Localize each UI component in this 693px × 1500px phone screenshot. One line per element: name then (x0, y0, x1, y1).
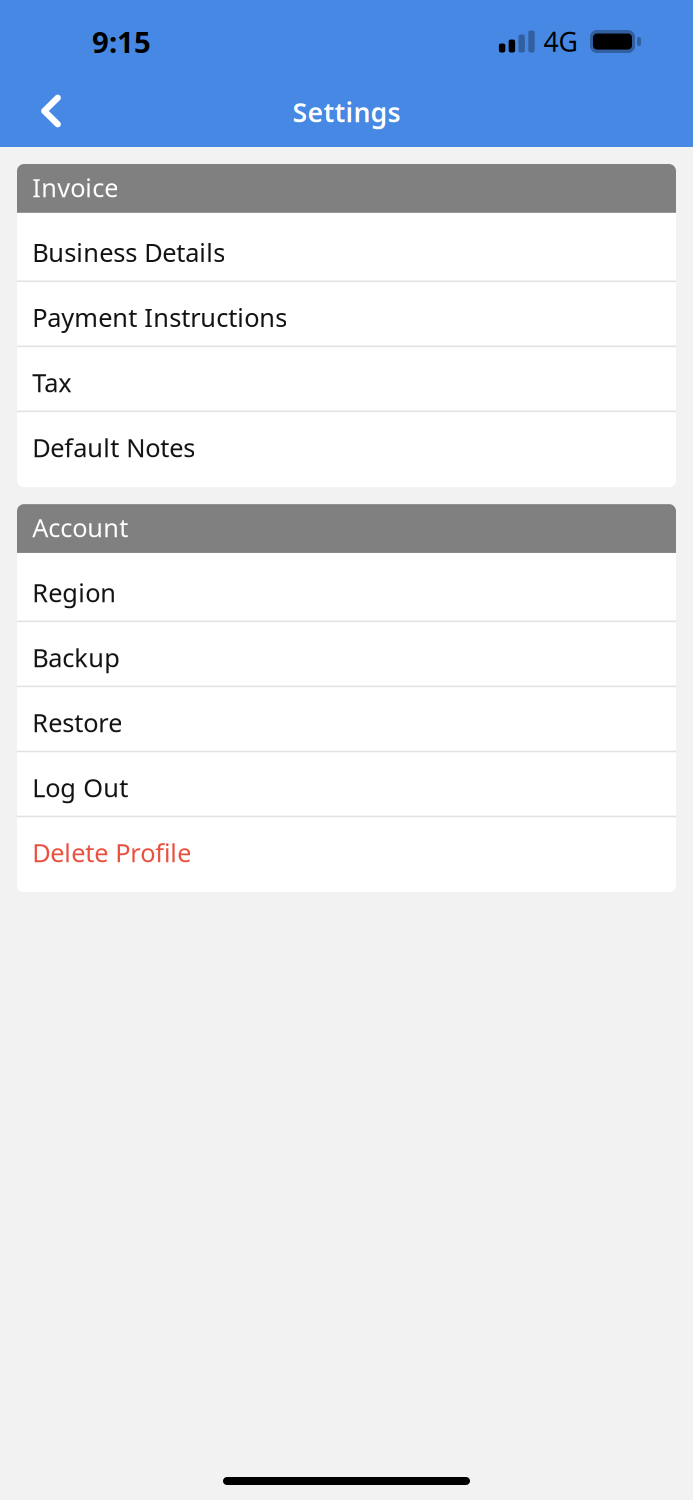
button[interactable]: Payment Instructions (17, 282, 676, 346)
button[interactable]: Default Notes (17, 412, 676, 476)
staticText: Account (32, 511, 128, 544)
staticText: Settings (292, 94, 400, 130)
staticText: Business Details (32, 235, 225, 269)
button[interactable]: Region (17, 557, 676, 621)
staticText: Default Notes (32, 431, 195, 464)
staticText: Backup (32, 641, 120, 674)
button[interactable]: Tax (17, 347, 676, 411)
staticText: Log Out (32, 771, 128, 804)
staticText: 4G (543, 24, 577, 59)
staticText: Restore (32, 706, 122, 739)
button[interactable]: Business Details (17, 217, 676, 280)
button[interactable]: Restore (17, 687, 676, 751)
staticText: 9:15 (92, 22, 151, 61)
staticText: Delete Profile (32, 836, 191, 869)
button[interactable]: Delete Profile (17, 817, 676, 881)
button[interactable]: Log Out (17, 752, 676, 816)
staticText: Payment Instructions (32, 300, 287, 334)
staticText: Invoice (32, 171, 118, 204)
staticText: Region (32, 575, 116, 609)
button[interactable]: Back (25, 85, 77, 145)
button[interactable]: Backup (17, 622, 676, 686)
staticText: Tax (32, 365, 71, 399)
